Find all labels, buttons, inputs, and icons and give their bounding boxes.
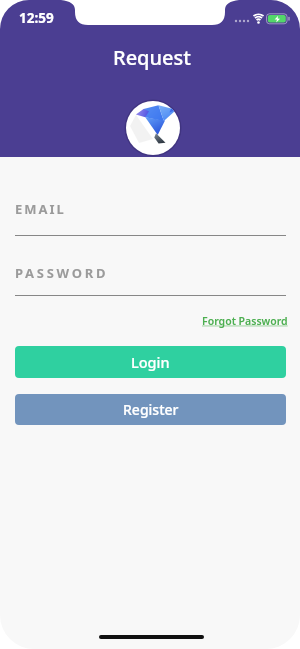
staticText: Request [113,44,191,71]
staticText: 12:59 [19,9,54,27]
button[interactable]: Forgot Password [202,314,288,328]
staticText: EMAIL [15,200,66,218]
staticText: PASSWORD [15,264,109,282]
button[interactable]: Login [15,346,286,378]
staticText: Register [123,400,179,419]
staticText: Login [131,352,170,372]
button[interactable]: Register [15,394,286,425]
